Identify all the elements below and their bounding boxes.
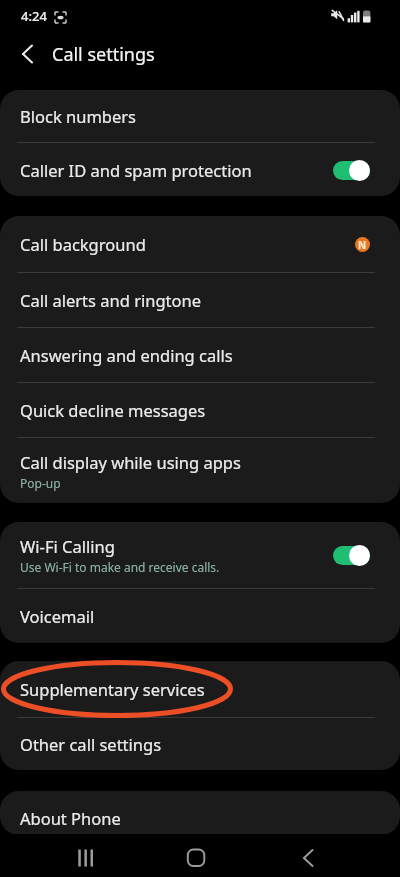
button[interactable]: Voicemail: [0, 589, 400, 643]
staticText: Call settings: [52, 42, 155, 67]
staticText: Other call settings: [20, 733, 162, 755]
button[interactable]: Block numbers: [0, 90, 400, 142]
staticText: Pop-up: [20, 475, 61, 491]
staticText: Call display while using apps: [20, 451, 241, 473]
staticText: Wi-Fi Calling: [20, 535, 115, 557]
button[interactable]: Call alerts and ringtone: [0, 273, 400, 327]
button[interactable]: Supplementary services: [0, 661, 400, 717]
button[interactable]: Call display while using apps: [0, 438, 400, 503]
staticText: Caller ID and spam protection: [20, 159, 252, 181]
button[interactable]: Back: [278, 840, 338, 875]
button[interactable]: Other call settings: [0, 718, 400, 770]
staticText: Voicemail: [20, 605, 95, 627]
staticText: About Phone: [20, 807, 121, 829]
staticText: Answering and ending calls: [20, 344, 233, 366]
button[interactable]: Wi-Fi Calling: [0, 522, 400, 588]
staticText: 4:24: [21, 7, 47, 25]
button[interactable]: Answering and ending calls: [0, 328, 400, 382]
staticText: Use Wi-Fi to make and receive calls.: [20, 559, 220, 575]
button[interactable]: Recent apps: [55, 840, 115, 875]
button[interactable]: Navigate up: [7, 33, 49, 75]
staticText: Quick decline messages: [20, 399, 206, 421]
button[interactable]: Home: [166, 840, 226, 875]
staticText: N: [358, 238, 367, 252]
staticText: Call background: [20, 233, 146, 255]
button[interactable]: Caller ID and spam protection: [0, 143, 400, 196]
button[interactable]: Call background: [0, 216, 400, 272]
staticText: Supplementary services: [20, 678, 205, 700]
button[interactable]: About Phone: [0, 791, 400, 835]
staticText: Call alerts and ringtone: [20, 289, 202, 311]
button[interactable]: Quick decline messages: [0, 383, 400, 437]
staticText: Block numbers: [20, 105, 136, 127]
